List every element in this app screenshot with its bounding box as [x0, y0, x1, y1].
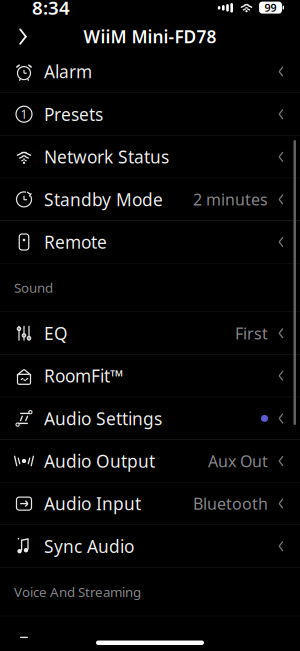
- button[interactable]: 1: [0, 93, 300, 135]
- button[interactable]: Network Status: [0, 136, 300, 178]
- staticText: Audio Settings: [44, 407, 162, 430]
- staticText: Sync Audio: [44, 535, 134, 558]
- staticText: Aux Out: [208, 450, 268, 472]
- staticText: EQ: [44, 322, 68, 345]
- button[interactable]: Standby Mode: [0, 178, 300, 220]
- button[interactable]: Audio Output: [0, 440, 300, 482]
- staticText: Presets: [44, 103, 103, 126]
- staticText: Voice And Streaming: [14, 583, 141, 601]
- staticText: Audio Output: [44, 449, 155, 472]
- staticText: Sound: [14, 279, 53, 296]
- staticText: 99: [264, 0, 276, 15]
- staticText: Network Status: [44, 145, 169, 168]
- staticText: Remote: [44, 230, 107, 253]
- staticText: Standby Mode: [44, 188, 163, 211]
- button[interactable]: Back: [6, 22, 40, 52]
- button[interactable]: Alarm: [0, 51, 300, 93]
- staticText: RoomFit™: [44, 364, 123, 387]
- button[interactable]: EQ: [0, 312, 300, 354]
- staticText: 8:34: [32, 0, 70, 20]
- button[interactable]: Audio Input: [0, 483, 300, 525]
- staticText: 2 minutes: [193, 189, 268, 210]
- staticText: 1: [20, 106, 27, 122]
- staticText: Alarm: [44, 60, 92, 83]
- staticText: Bluetooth: [193, 493, 268, 514]
- button[interactable]: RoomFit™: [0, 355, 300, 397]
- button[interactable]: Voice and streaming option: [0, 616, 300, 651]
- button[interactable]: Remote: [0, 221, 300, 263]
- staticText: First: [235, 323, 268, 344]
- button[interactable]: Sync Audio: [0, 525, 300, 567]
- staticText: Audio Input: [44, 492, 141, 515]
- staticText: WiiM Mini-FD78: [83, 25, 216, 48]
- button[interactable]: Audio Settings: [0, 397, 300, 439]
